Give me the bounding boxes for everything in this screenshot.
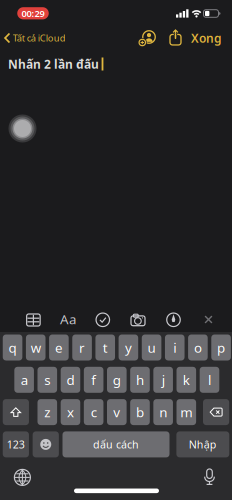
staticText: Aa — [60, 310, 76, 328]
button[interactable]: m — [176, 399, 196, 425]
button[interactable]: u — [142, 334, 161, 360]
button[interactable]: y — [119, 334, 138, 360]
button[interactable]: q — [3, 334, 22, 360]
button[interactable] — [3, 399, 29, 425]
button[interactable]: r — [72, 334, 92, 360]
staticText: o — [194, 339, 202, 356]
staticText: 00:29 — [21, 7, 44, 19]
button[interactable]: o — [188, 334, 208, 360]
button[interactable] — [138, 29, 156, 47]
staticText: t — [103, 339, 108, 356]
button[interactable]: c — [84, 399, 103, 425]
staticText: 123 — [7, 437, 25, 451]
button[interactable]: j — [153, 367, 173, 393]
button[interactable]: z — [37, 399, 57, 425]
staticText: p — [217, 339, 225, 356]
staticText: c — [91, 403, 97, 421]
staticText: Nhấn 2 lần đấu — [8, 56, 99, 72]
button[interactable] — [14, 469, 30, 485]
staticText: x — [67, 403, 74, 421]
staticText: r — [79, 339, 85, 356]
staticText: d — [66, 371, 74, 389]
button[interactable] — [33, 431, 59, 457]
staticText: dấu cách — [93, 437, 139, 451]
button[interactable] — [167, 313, 180, 327]
button[interactable]: t — [95, 334, 115, 360]
button[interactable]: h — [130, 367, 150, 393]
staticText: Tất cả iCloud — [13, 32, 66, 44]
button[interactable]: p — [211, 334, 231, 360]
staticText: z — [44, 403, 50, 421]
staticText: e — [55, 339, 63, 356]
button[interactable] — [27, 314, 40, 326]
button[interactable]: Tất cả iCloud — [4, 32, 66, 44]
staticText: i — [173, 339, 176, 356]
button[interactable] — [203, 399, 229, 425]
staticText: g — [113, 371, 121, 389]
staticText: s — [44, 371, 50, 389]
button[interactable] — [96, 313, 109, 327]
button[interactable]: d — [61, 367, 80, 393]
button[interactable]: i — [165, 334, 184, 360]
button[interactable]: l — [200, 367, 219, 393]
button[interactable] — [204, 315, 212, 323]
button[interactable]: Xong — [191, 30, 222, 46]
staticText: u — [148, 339, 156, 356]
button[interactable]: a — [14, 367, 34, 393]
button[interactable] — [169, 29, 182, 45]
button[interactable]: e — [49, 334, 69, 360]
button[interactable]: s — [37, 367, 57, 393]
button[interactable] — [131, 313, 145, 326]
button[interactable]: Nhập — [176, 431, 229, 457]
button[interactable]: f — [84, 367, 103, 393]
button[interactable]: w — [26, 334, 45, 360]
staticText: m — [180, 403, 192, 421]
staticText: h — [136, 371, 144, 389]
staticText: k — [183, 371, 190, 389]
button[interactable]: 00:29 — [17, 7, 49, 19]
staticText: y — [125, 339, 132, 356]
button[interactable]: k — [176, 367, 196, 393]
button[interactable] — [204, 468, 215, 485]
button[interactable]: v — [107, 399, 127, 425]
button[interactable]: x — [61, 399, 80, 425]
button[interactable]: Aa — [60, 310, 76, 328]
staticText: Nhập — [189, 437, 217, 451]
button[interactable]: n — [153, 399, 173, 425]
button[interactable]: g — [107, 367, 127, 393]
staticText: j — [162, 371, 165, 389]
staticText: q — [9, 339, 17, 356]
staticText: w — [31, 339, 41, 356]
staticText: l — [208, 371, 211, 389]
staticText: a — [21, 371, 28, 389]
staticText: b — [136, 403, 144, 421]
staticText: n — [159, 403, 167, 421]
button[interactable]: dấu cách — [62, 431, 169, 457]
button[interactable]: b — [130, 399, 150, 425]
staticText: Xong — [191, 30, 222, 46]
staticText: f — [91, 371, 96, 389]
button[interactable]: 123 — [3, 431, 29, 457]
staticText: v — [113, 403, 120, 421]
